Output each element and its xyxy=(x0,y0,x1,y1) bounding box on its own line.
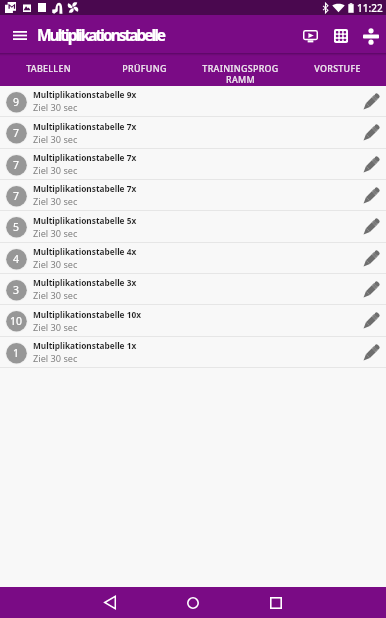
button[interactable]: 7 xyxy=(0,149,386,180)
staticText: Multiplikationstabelle 9x xyxy=(33,89,137,100)
button[interactable]: Bearbeiten xyxy=(360,310,382,332)
staticText: 9 xyxy=(13,95,20,109)
button[interactable]: TABELLEN xyxy=(0,53,96,86)
staticText: Multiplikationstabelle 7x xyxy=(33,183,137,194)
button[interactable]: TRAININGSPROGRAMM xyxy=(192,53,289,86)
button[interactable]: Bearbeiten xyxy=(360,216,382,238)
button[interactable]: 3 xyxy=(0,274,386,305)
button[interactable]: Bearbeiten xyxy=(360,122,382,144)
staticText: Multiplikationstabelle 4x xyxy=(33,246,137,257)
button[interactable]: Division xyxy=(356,21,386,51)
staticText: Multiplikationstabelle 5x xyxy=(33,215,137,226)
button[interactable]: Übersicht xyxy=(261,587,291,618)
staticText: Ziel 30 sec xyxy=(33,164,78,177)
button[interactable]: Bearbeiten xyxy=(360,248,382,270)
staticText: Ziel 30 sec xyxy=(33,133,78,146)
button[interactable]: 7 xyxy=(0,117,386,149)
staticText: Ziel 30 sec xyxy=(33,195,78,208)
staticText: TABELLEN xyxy=(26,62,71,74)
button[interactable]: PRÜFUNG xyxy=(96,53,192,86)
staticText: Ziel 30 sec xyxy=(33,352,78,365)
staticText: 4 xyxy=(13,252,20,266)
button[interactable]: Bearbeiten xyxy=(360,342,382,364)
staticText: Multiplikationstabelle 7x xyxy=(33,121,137,132)
button[interactable]: 4 xyxy=(0,243,386,274)
staticText: 10 xyxy=(10,314,23,328)
staticText: Multiplikationstabelle 1x xyxy=(33,340,137,351)
staticText: TRAININGSPROGRAMM xyxy=(200,62,281,86)
staticText: Ziel 30 sec xyxy=(33,289,78,302)
button[interactable]: 9 xyxy=(0,86,386,117)
staticText: 7 xyxy=(13,189,20,203)
button[interactable]: 10 xyxy=(0,305,386,337)
button[interactable]: Zurück xyxy=(95,587,125,618)
staticText: Ziel 30 sec xyxy=(33,101,78,114)
staticText: PRÜFUNG xyxy=(122,62,167,74)
button[interactable]: Menü xyxy=(2,18,37,53)
staticText: 3 xyxy=(13,283,20,297)
button[interactable]: Bearbeiten xyxy=(360,91,382,113)
button[interactable]: Bearbeiten xyxy=(360,279,382,301)
staticText: 7 xyxy=(13,126,20,140)
staticText: 7 xyxy=(13,158,20,172)
staticText: Multiplikationstabelle 10x xyxy=(33,309,142,320)
staticText: Ziel 30 sec xyxy=(33,227,78,240)
staticText: VORSTUFE xyxy=(314,62,361,74)
button[interactable]: 7 xyxy=(0,180,386,211)
staticText: 1 xyxy=(13,346,20,360)
button[interactable]: Bearbeiten xyxy=(360,185,382,207)
button[interactable]: Tabelle xyxy=(326,21,356,51)
staticText: Multiplikationstabelle 3x xyxy=(33,277,137,288)
staticText: 11:22 xyxy=(357,1,383,15)
staticText: Multiplikationstabelle 7x xyxy=(33,152,137,163)
staticText: Ziel 30 sec xyxy=(33,258,78,271)
staticText: 5 xyxy=(13,220,20,234)
button[interactable]: 5 xyxy=(0,211,386,243)
button[interactable]: VORSTUFE xyxy=(289,53,386,86)
staticText: Multiplikationstabelle xyxy=(37,24,165,45)
button[interactable]: Präsentation xyxy=(295,21,326,51)
button[interactable]: Bearbeiten xyxy=(360,154,382,176)
button[interactable]: Startbildschirm xyxy=(178,587,208,618)
button[interactable]: 1 xyxy=(0,337,386,368)
staticText: Ziel 30 sec xyxy=(33,321,78,334)
